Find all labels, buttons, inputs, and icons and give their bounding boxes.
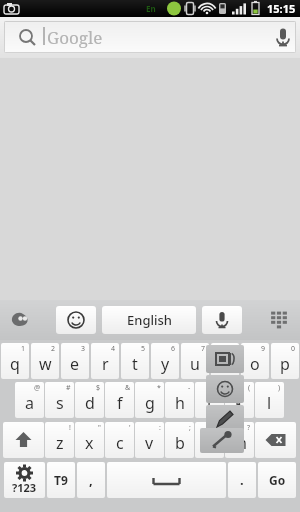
staticText: ' xyxy=(129,423,131,433)
staticText: ( xyxy=(248,383,251,393)
staticText: y xyxy=(161,353,170,375)
button[interactable]: Voice search xyxy=(266,17,300,58)
staticText: m xyxy=(232,432,247,454)
button[interactable]: e xyxy=(61,343,89,379)
button[interactable]: g xyxy=(135,382,164,418)
staticText: f xyxy=(117,392,123,414)
staticText: e xyxy=(70,353,80,375)
staticText: h xyxy=(175,392,185,414)
button[interactable]: Voice input xyxy=(202,306,242,334)
button[interactable]: t xyxy=(121,343,149,379)
staticText: * xyxy=(157,383,161,393)
staticText: 0 xyxy=(291,344,296,354)
button[interactable]: Space xyxy=(107,462,226,498)
staticText: i xyxy=(223,353,228,375)
button[interactable]: Input option xyxy=(206,345,244,373)
staticText: 3 xyxy=(81,344,86,354)
staticText: . xyxy=(240,471,244,489)
button[interactable]: r xyxy=(91,343,119,379)
staticText: l xyxy=(267,392,272,414)
staticText: English xyxy=(127,311,172,329)
button[interactable]: Emoji xyxy=(56,306,96,334)
staticText: 8 xyxy=(231,344,236,354)
button[interactable]: Number pad xyxy=(264,307,294,333)
button[interactable]: T9 xyxy=(47,462,75,498)
staticText: 2 xyxy=(51,344,56,354)
staticText: g xyxy=(145,392,155,414)
staticText: w xyxy=(39,353,52,375)
button[interactable]: Voice typing xyxy=(200,428,244,453)
staticText: T9 xyxy=(54,472,68,488)
staticText: 9 xyxy=(261,344,266,354)
staticText: @ xyxy=(34,383,41,393)
staticText: ) xyxy=(278,383,281,393)
staticText: " xyxy=(98,423,101,433)
staticText: : xyxy=(159,423,161,433)
button[interactable]: ?123 xyxy=(4,462,45,498)
staticText: ?123 xyxy=(12,480,37,495)
staticText: v xyxy=(145,432,154,454)
button[interactable]: k xyxy=(225,382,254,418)
button[interactable]: z xyxy=(45,422,74,458)
staticText: , xyxy=(89,471,93,489)
staticText: 4 xyxy=(111,344,116,354)
staticText: k xyxy=(235,392,244,414)
button[interactable]: s xyxy=(45,382,74,418)
button[interactable]: Input option xyxy=(206,405,244,433)
staticText: + xyxy=(216,383,221,393)
button[interactable]: c xyxy=(105,422,134,458)
staticText: # xyxy=(66,383,71,393)
staticText: ! xyxy=(69,423,71,433)
staticText: 1 xyxy=(21,344,26,354)
button[interactable]: p xyxy=(271,343,299,379)
button[interactable]: u xyxy=(181,343,209,379)
button[interactable]: o xyxy=(241,343,269,379)
staticText: u xyxy=(190,353,200,375)
staticText: - xyxy=(188,383,191,393)
staticText: Go xyxy=(269,472,286,488)
staticText: 15:15 xyxy=(267,1,296,16)
button[interactable]: y xyxy=(151,343,179,379)
button[interactable]: l xyxy=(255,382,284,418)
button[interactable]: . xyxy=(228,462,256,498)
staticText: b xyxy=(175,432,185,454)
button[interactable]: h xyxy=(165,382,194,418)
staticText: ; xyxy=(189,423,191,433)
staticText: En xyxy=(146,3,156,14)
staticText: c xyxy=(116,432,124,454)
button[interactable]: n xyxy=(195,422,224,458)
staticText: 7 xyxy=(201,344,206,354)
button[interactable]: Keyboard settings xyxy=(6,307,36,333)
button[interactable]: v xyxy=(135,422,164,458)
button[interactable]: x xyxy=(75,422,104,458)
button[interactable]: w xyxy=(31,343,59,379)
staticText: j xyxy=(207,392,212,414)
button[interactable]: Shift xyxy=(3,422,44,458)
staticText: o xyxy=(250,353,260,375)
button[interactable]: English xyxy=(102,306,196,334)
button[interactable]: Input option xyxy=(206,375,244,403)
button[interactable]: b xyxy=(165,422,194,458)
staticText: Google xyxy=(47,26,103,49)
staticText: r xyxy=(102,353,109,375)
button[interactable]: q xyxy=(1,343,29,379)
staticText: s xyxy=(56,392,64,414)
button[interactable]: Google xyxy=(4,21,296,53)
staticText: p xyxy=(280,353,290,375)
button[interactable]: d xyxy=(75,382,104,418)
staticText: d xyxy=(85,392,95,414)
button[interactable]: j xyxy=(195,382,224,418)
staticText: q xyxy=(10,353,20,375)
button[interactable]: m xyxy=(225,422,254,458)
staticText: & xyxy=(125,383,131,393)
button[interactable]: Backspace xyxy=(255,422,296,458)
button[interactable]: Go xyxy=(258,462,296,498)
staticText: x xyxy=(85,432,94,454)
button[interactable]: a xyxy=(15,382,44,418)
staticText: 5 xyxy=(141,344,146,354)
staticText: / xyxy=(218,423,221,433)
button[interactable]: i xyxy=(211,343,239,379)
staticText: ? xyxy=(247,423,251,433)
button[interactable]: , xyxy=(77,462,105,498)
button[interactable]: f xyxy=(105,382,134,418)
